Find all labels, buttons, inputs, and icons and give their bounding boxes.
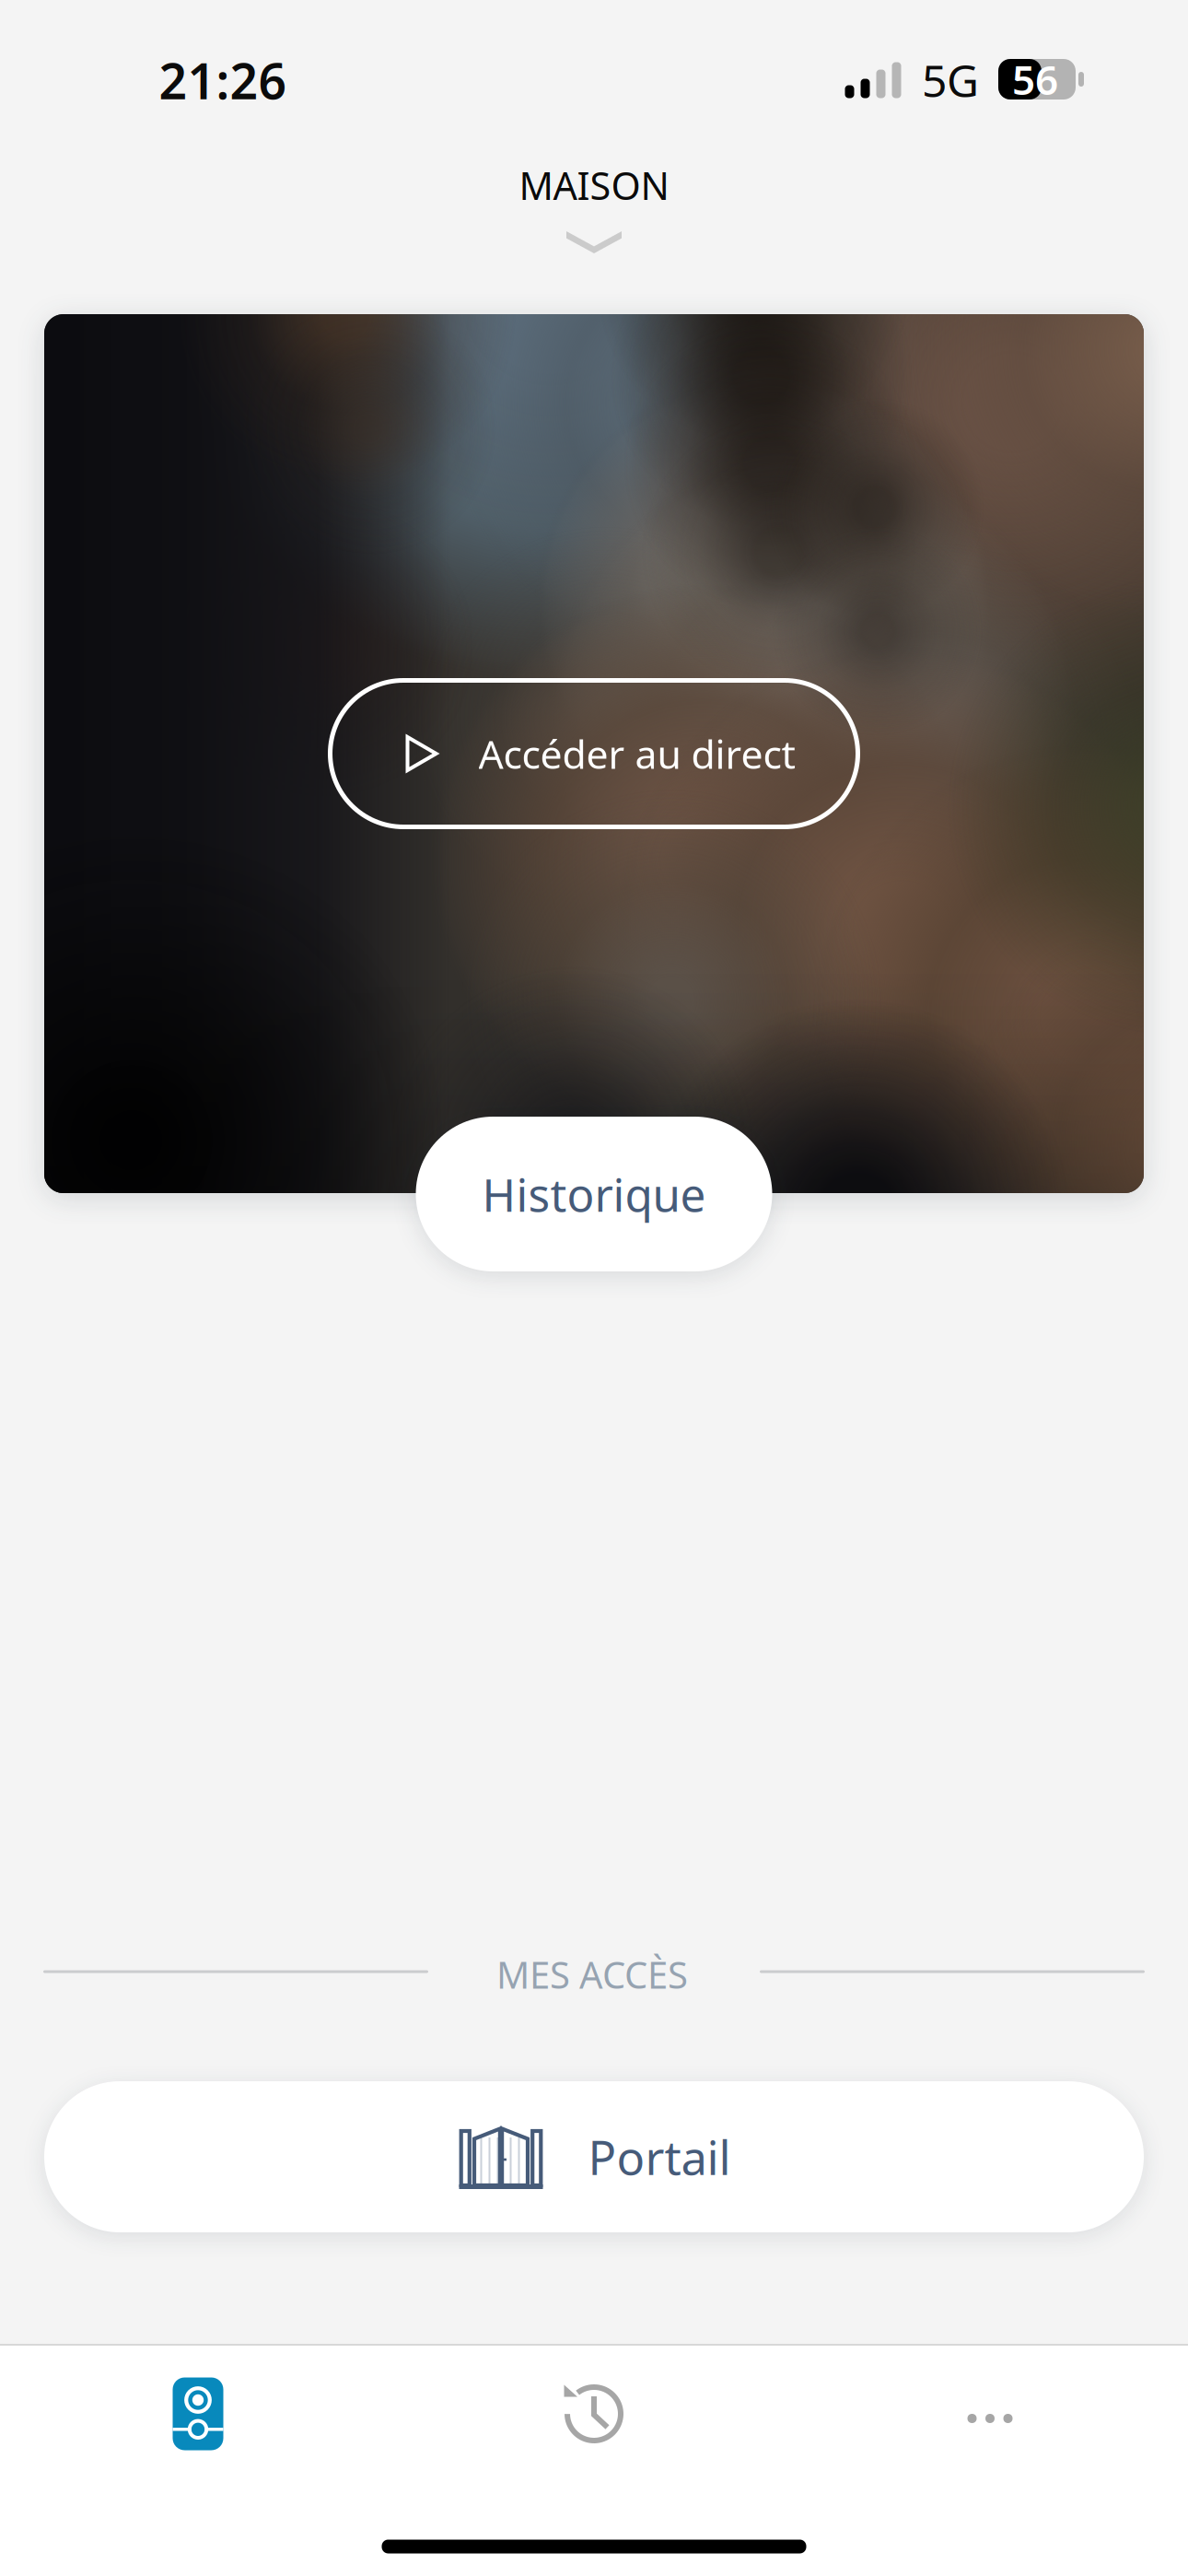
- button[interactable]: MAISON: [401, 134, 787, 244]
- button[interactable]: Portail: [44, 2081, 1144, 2232]
- button[interactable]: More: [792, 2363, 1188, 2465]
- button[interactable]: Accéder au direct: [330, 680, 858, 827]
- button[interactable]: History: [396, 2363, 792, 2465]
- staticText: 21:26: [159, 48, 287, 113]
- staticText: Accéder au direct: [478, 728, 795, 780]
- staticText: Historique: [482, 1164, 706, 1224]
- staticText: MES ACCÈS: [496, 1950, 688, 1999]
- staticText: 56: [1012, 52, 1058, 106]
- button[interactable]: Intercom: [0, 2363, 396, 2465]
- button[interactable]: Historique: [416, 1117, 772, 1271]
- staticText: MAISON: [519, 160, 669, 211]
- staticText: 5G: [922, 51, 979, 109]
- staticText: Portail: [588, 2126, 731, 2188]
